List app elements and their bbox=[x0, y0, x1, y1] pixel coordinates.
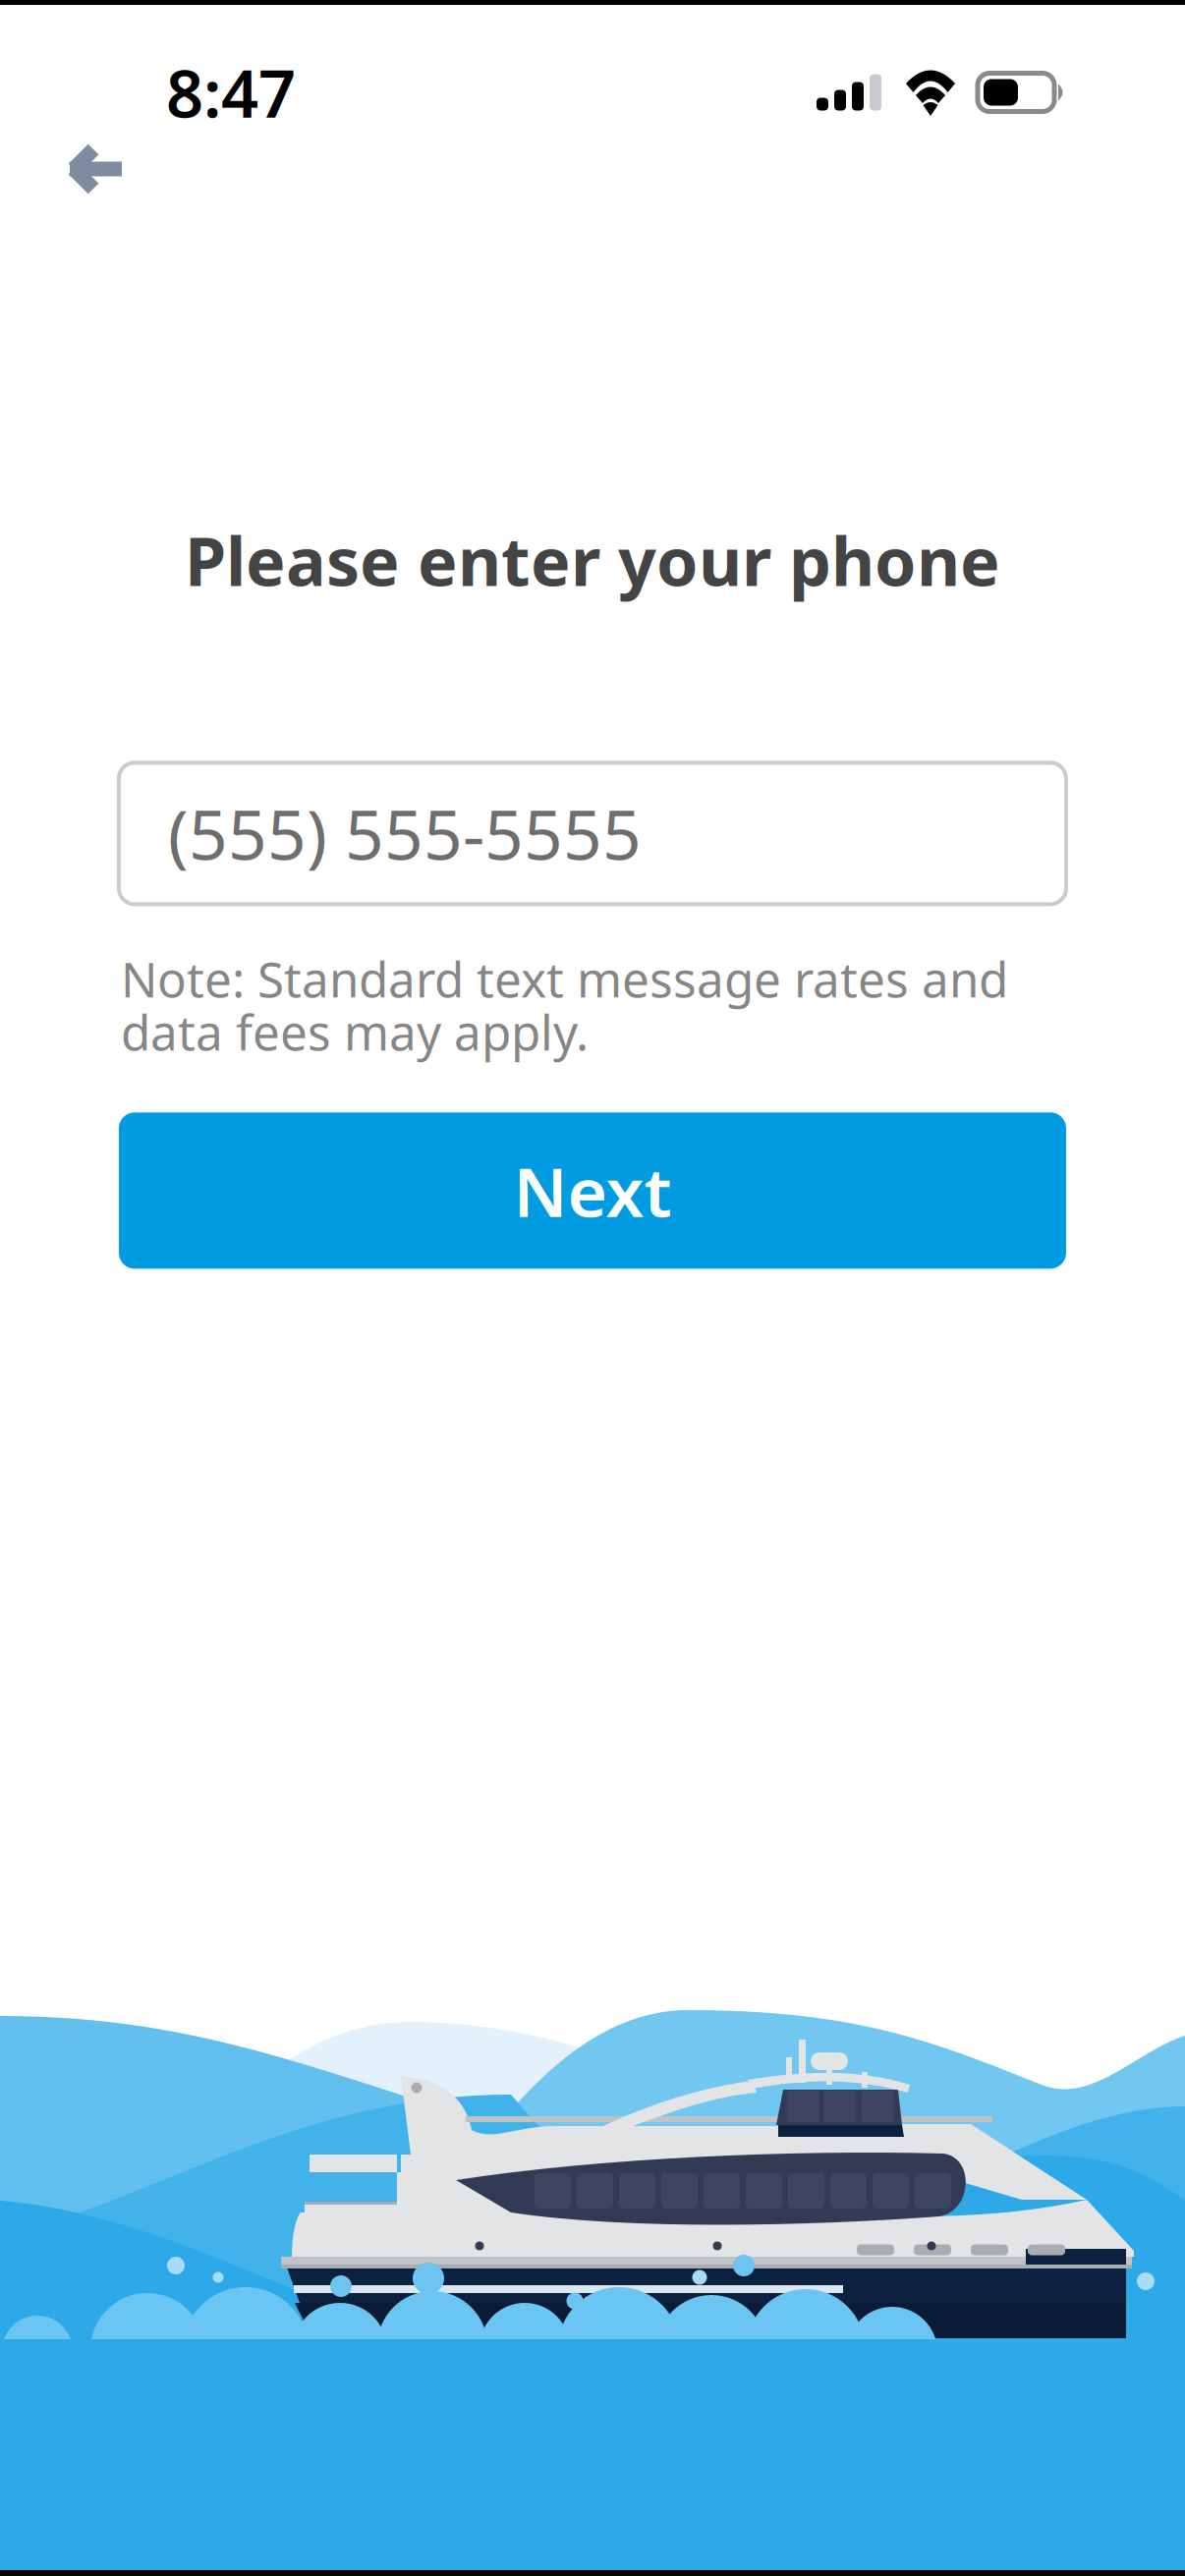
button[interactable]: Back bbox=[0, 122, 162, 220]
button[interactable]: Next bbox=[119, 1112, 1066, 1269]
staticText: data fees may apply. bbox=[121, 999, 589, 1064]
staticText: (555) 555-5555 bbox=[168, 788, 642, 879]
staticText: Note: Standard text message rates and bbox=[121, 946, 1008, 1011]
staticText: Please enter your phone bbox=[185, 516, 1000, 605]
staticText: Next bbox=[513, 1145, 672, 1236]
staticText: 8:47 bbox=[166, 49, 296, 136]
